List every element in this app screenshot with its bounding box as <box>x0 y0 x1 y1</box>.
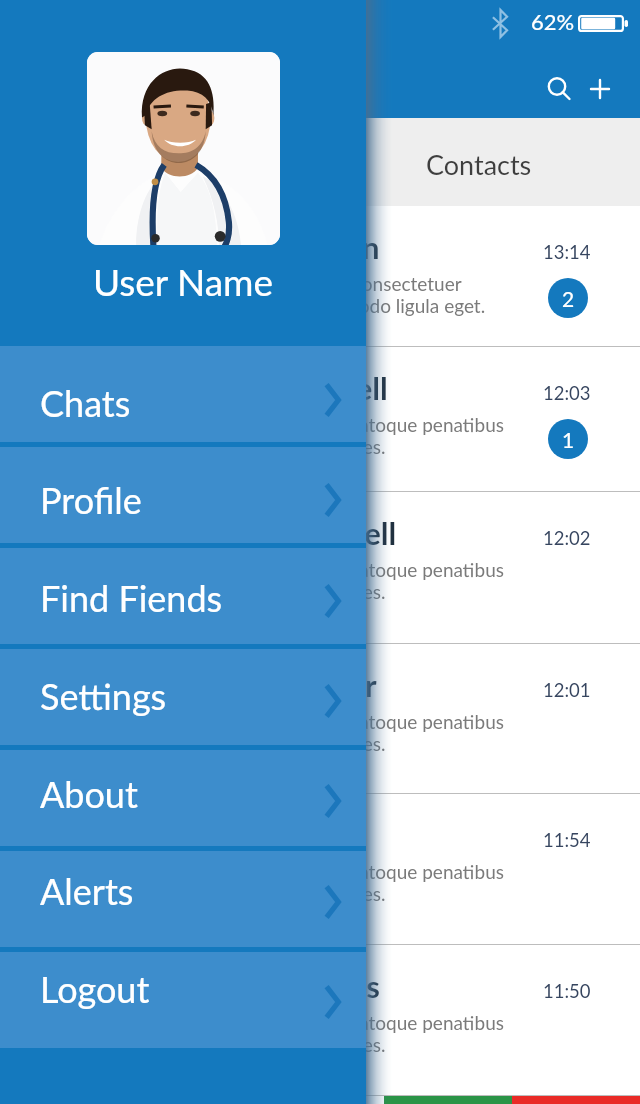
button[interactable]: Add <box>577 66 623 112</box>
staticText: 11:54 <box>543 829 591 851</box>
button[interactable]: About <box>0 750 366 846</box>
staticText: 11:50 <box>543 980 591 1002</box>
staticText: 62% <box>531 8 575 34</box>
staticText: Lorem ipsum dolor sit amet natoque penat… <box>118 558 548 603</box>
button[interactable]: Nam quam Mitchell <box>0 347 640 492</box>
button[interactable]: Find Fiends <box>0 548 366 644</box>
button[interactable]: Chats <box>0 346 366 442</box>
button[interactable]: Settings <box>0 649 366 745</box>
staticText: 13:14 <box>543 241 591 263</box>
staticText: About <box>40 772 138 815</box>
staticText: Logout <box>40 967 150 1010</box>
staticText: Chats <box>40 381 131 424</box>
staticText: 12:01 <box>543 679 591 701</box>
button[interactable]: Sed fringilla mauris <box>0 945 640 1096</box>
staticText: Lorem ipsum dolor sit amet natoque penat… <box>118 710 548 755</box>
staticText: Quisque rutrum Bell <box>118 514 397 551</box>
staticText: 12:02 <box>543 527 591 549</box>
staticText: Phasellus leo dolor <box>118 666 377 703</box>
staticText: 2 <box>562 286 575 311</box>
staticText: Settings <box>40 674 167 717</box>
staticText: Nam quam Mitchell <box>118 369 388 406</box>
staticText: Sed fringilla mauris <box>118 967 380 1004</box>
staticText: Lorem ipsum dolor sit amet natoque penat… <box>118 1011 548 1056</box>
button[interactable]: Alerts <box>0 851 366 947</box>
staticText: Find Fiends <box>40 576 223 619</box>
staticText: 1 <box>562 427 575 452</box>
staticText: Lorem ipsum dolor sit amet natoque penat… <box>118 860 548 905</box>
button[interactable]: Profile <box>0 447 366 543</box>
button[interactable]: Search <box>535 66 581 112</box>
staticText: Vestibulum Bell <box>118 816 334 853</box>
staticText: Profile <box>40 478 142 521</box>
button[interactable]: Phasellus leo dolor <box>0 644 640 794</box>
staticText: Contacts <box>426 148 532 180</box>
staticText: Lorem ipsum dolor sit amet, consectetuer… <box>118 272 548 317</box>
button[interactable]: Quisque rutrum Bell <box>0 492 640 644</box>
button[interactable]: Logout <box>0 952 366 1048</box>
staticText: User Name <box>0 259 366 303</box>
button[interactable]: Donec vitae sapien <box>0 206 640 347</box>
staticText: Alerts <box>40 869 134 912</box>
staticText: Donec vitae sapien <box>118 228 380 265</box>
staticText: Lorem ipsum dolor sit amet natoque penat… <box>118 413 548 458</box>
staticText: 12:03 <box>543 382 591 404</box>
button[interactable]: Vestibulum Bell <box>0 794 640 945</box>
